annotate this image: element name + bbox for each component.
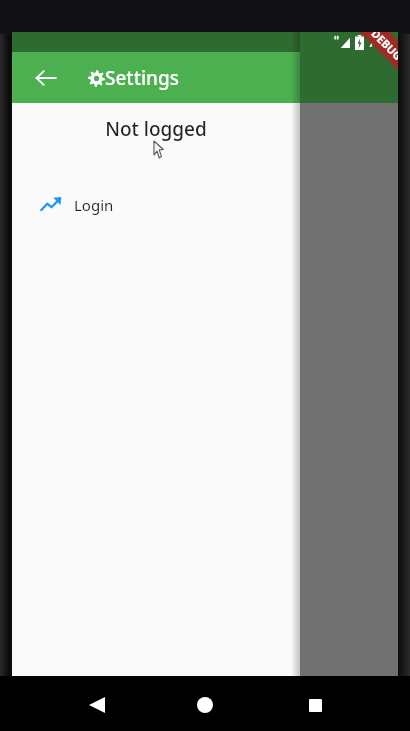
staticText: Login xyxy=(74,195,114,215)
button[interactable]: Login xyxy=(12,188,300,222)
button[interactable]: Recent apps xyxy=(295,685,335,725)
staticText: Not logged xyxy=(12,116,300,142)
staticText: Settings xyxy=(105,65,179,91)
button[interactable]: Back xyxy=(24,56,68,100)
staticText: DEBUG xyxy=(368,32,398,63)
staticText: 7:16 xyxy=(368,33,394,51)
button[interactable]: Back xyxy=(77,685,117,725)
button[interactable]: Home xyxy=(185,685,225,725)
